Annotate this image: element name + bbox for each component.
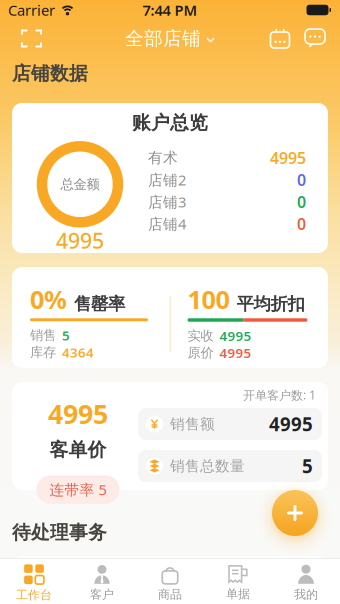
- button[interactable]: 日历: [262, 20, 298, 57]
- staticText: 库存: [30, 344, 56, 360]
- staticText: 平均折扣: [236, 293, 304, 315]
- staticText: 我的: [294, 587, 318, 602]
- staticText: Carrier: [8, 0, 55, 20]
- staticText: 4995: [219, 344, 251, 362]
- staticText: 4995: [269, 412, 313, 436]
- button[interactable]: 工作台: [0, 559, 68, 602]
- staticText: 4995: [48, 396, 108, 431]
- staticText: 商品: [158, 587, 182, 602]
- staticText: 4995: [56, 226, 104, 255]
- staticText: 开单客户数: 1: [243, 387, 316, 403]
- staticText: 4995: [270, 147, 306, 168]
- staticText: 店铺数据: [12, 62, 88, 85]
- staticText: 7:44 PM: [142, 0, 197, 20]
- button[interactable]: 扫一扫: [0, 20, 41, 57]
- button[interactable]: 消息: [298, 20, 340, 57]
- staticText: 全部店铺: [125, 27, 201, 50]
- staticText: 销售额: [170, 415, 215, 433]
- staticText: 销售: [30, 327, 56, 343]
- staticText: 4364: [62, 343, 94, 361]
- staticText: 5: [62, 326, 70, 344]
- staticText: 销售总数量: [170, 457, 245, 475]
- button[interactable]: 商品: [136, 559, 204, 602]
- staticText: 售罄率: [74, 293, 125, 315]
- staticText: 实收: [187, 328, 213, 344]
- staticText: 5: [302, 454, 313, 478]
- staticText: 客单价: [49, 438, 106, 461]
- staticText: 工作台: [16, 588, 52, 602]
- staticText: 0: [297, 213, 306, 234]
- button[interactable]: 新增: [272, 490, 318, 536]
- staticText: 待处理事务: [12, 521, 107, 544]
- staticText: 4995: [219, 327, 251, 345]
- staticText: 单据: [226, 587, 250, 601]
- staticText: 店铺2: [148, 170, 186, 190]
- staticText: 0: [297, 191, 306, 212]
- button[interactable]: 我的: [272, 559, 340, 602]
- staticText: 原价: [187, 345, 213, 361]
- button[interactable]: 全部店铺: [125, 27, 215, 50]
- staticText: 店铺3: [148, 192, 186, 212]
- staticText: 连带率 5: [49, 480, 106, 499]
- staticText: 总金额: [60, 176, 99, 192]
- staticText: 客户: [90, 587, 114, 602]
- staticText: 有术: [148, 149, 178, 167]
- staticText: 账户总览: [132, 111, 208, 134]
- staticText: 店铺4: [148, 214, 186, 234]
- staticText: 100: [187, 282, 229, 316]
- button[interactable]: 单据: [204, 560, 272, 601]
- button[interactable]: 客户: [68, 559, 136, 602]
- staticText: 0: [297, 169, 306, 190]
- staticText: 0%: [30, 282, 67, 316]
